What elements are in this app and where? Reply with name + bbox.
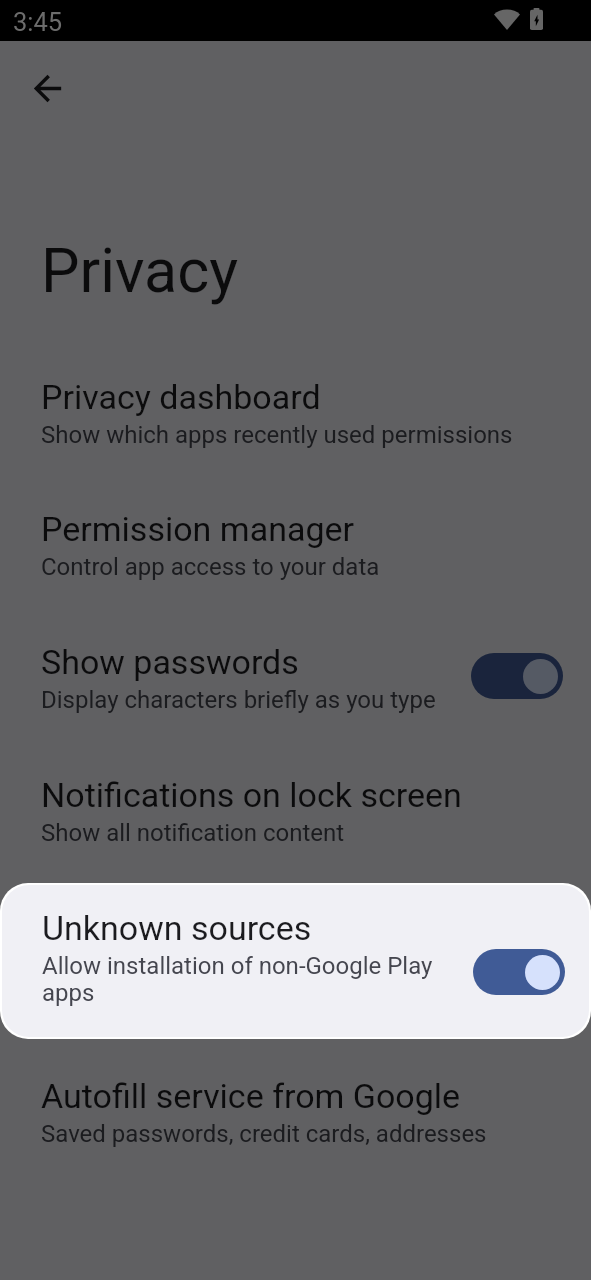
staticText: Autofill service from Google	[41, 1076, 461, 1116]
staticText: Privacy dashboard	[41, 377, 321, 417]
button[interactable]: Privacy dashboard	[0, 367, 591, 477]
staticText: 3:45	[13, 7, 63, 37]
button[interactable]: Notifications on lock screen	[0, 765, 591, 875]
button[interactable]: Toggle setting	[473, 949, 565, 995]
button[interactable]: Toggle setting	[471, 653, 563, 699]
staticText: Display characters briefly as you type	[41, 686, 436, 714]
staticText: Allow installation of non-Google Play ap…	[42, 952, 442, 1007]
staticText: Show all notification content	[41, 819, 345, 847]
staticText: Unknown sources	[42, 908, 312, 948]
staticText: Control app access to your data	[41, 553, 380, 581]
button[interactable]: Show passwords	[0, 632, 591, 742]
staticText: Permission manager	[41, 509, 355, 549]
button[interactable]: Navigate up	[23, 64, 71, 112]
button[interactable]: Unknown sources	[2, 885, 589, 1037]
button[interactable]: Autofill service from Google	[0, 1066, 591, 1176]
button[interactable]: Permission manager	[0, 499, 591, 609]
staticText: Show passwords	[41, 642, 299, 682]
staticText: Show which apps recently used permission…	[41, 421, 513, 449]
staticText: Privacy	[41, 235, 239, 306]
staticText: Saved passwords, credit cards, addresses	[41, 1120, 487, 1148]
staticText: Notifications on lock screen	[41, 775, 462, 815]
